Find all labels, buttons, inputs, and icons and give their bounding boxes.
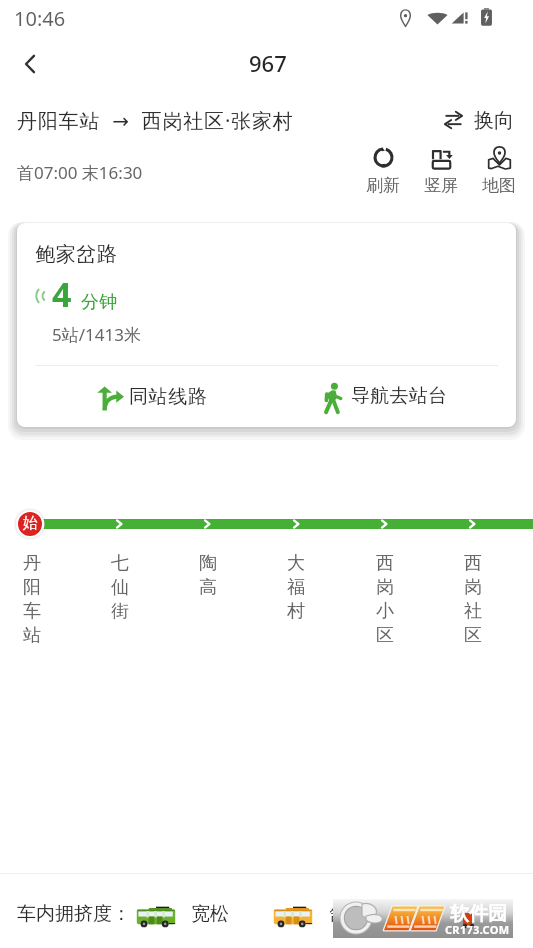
staticText: 陶 xyxy=(199,552,217,575)
staticText: 七 xyxy=(111,552,129,575)
other: Watermark xyxy=(333,899,513,938)
staticText: 刷新 xyxy=(366,175,400,196)
staticText: 街 xyxy=(111,600,129,623)
staticText: 10:46 xyxy=(14,5,66,32)
button[interactable]: 同站线路 xyxy=(17,366,266,427)
staticText: 丹阳车站 → 西岗社区·张家村 xyxy=(17,107,294,134)
button[interactable]: 换向 xyxy=(444,107,514,133)
button[interactable]: 竖屏 xyxy=(419,146,463,196)
staticText: 大 xyxy=(287,552,305,575)
staticText: CR173.COM xyxy=(445,922,510,937)
button[interactable]: 地图 xyxy=(477,146,521,196)
staticText: 5站/1413米 xyxy=(52,323,141,346)
staticText: 丹 xyxy=(23,552,41,575)
staticText: 鲍家岔路 xyxy=(35,242,117,267)
staticText: 分钟 xyxy=(81,291,117,314)
staticText: 仙 xyxy=(111,576,129,599)
staticText: 社 xyxy=(464,600,482,623)
button[interactable]: 导航去站台 xyxy=(266,366,516,427)
button[interactable]: Back xyxy=(8,42,52,86)
staticText: 西 xyxy=(376,552,394,575)
staticText: 舒适 xyxy=(329,902,367,926)
staticText: 岗 xyxy=(464,576,482,599)
staticText: 软件园 xyxy=(450,902,507,926)
staticText: 福 xyxy=(287,576,305,599)
staticText: 换向 xyxy=(474,108,514,133)
staticText: 小 xyxy=(376,600,394,623)
staticText: 车内拥挤度： xyxy=(17,902,131,926)
staticText: 高 xyxy=(199,576,217,599)
staticText: 4 xyxy=(52,271,72,317)
staticText: 阳 xyxy=(23,576,41,599)
staticText: 导航去站台 xyxy=(351,384,448,408)
staticText: 宽松 xyxy=(191,902,229,926)
staticText: 西 xyxy=(464,552,482,575)
staticText: 首07:00 末16:30 xyxy=(17,161,143,184)
staticText: 同站线路 xyxy=(129,385,208,409)
button[interactable]: 鲍家岔路 xyxy=(17,223,516,427)
staticText: 区 xyxy=(464,624,482,647)
staticText: 967 xyxy=(249,48,287,78)
staticText: 村 xyxy=(287,600,305,623)
staticText: 岗 xyxy=(376,576,394,599)
staticText: 区 xyxy=(376,624,394,647)
staticText: 竖屏 xyxy=(424,175,458,196)
staticText: 站 xyxy=(23,624,41,647)
button[interactable]: 刷新 xyxy=(361,146,405,196)
staticText: 始 xyxy=(23,514,38,533)
staticText: 车 xyxy=(23,600,41,623)
staticText: 地图 xyxy=(482,175,516,196)
